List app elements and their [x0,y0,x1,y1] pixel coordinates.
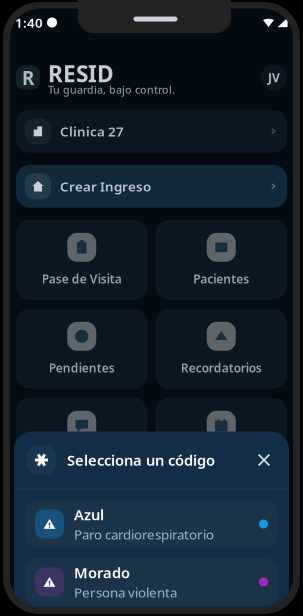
button[interactable]: Clinica 27 [16,110,287,153]
button[interactable]: Azul [25,500,278,547]
staticText: 1:40 [15,14,43,31]
staticText: Morado [74,563,130,582]
staticText: RESID [48,58,114,89]
staticText: Pacientes [193,271,249,287]
staticText: Azul [74,505,104,524]
button[interactable]: Crear Ingreso [16,165,287,208]
button[interactable]: Pacientes [155,220,287,300]
staticText: R [22,65,34,90]
button[interactable]: Cerrar [252,448,276,472]
button[interactable]: Perfil JV [261,65,287,91]
staticText: Clinica 27 [60,122,124,140]
button[interactable]: Pendientes [16,309,147,389]
staticText: Persona violenta [74,583,177,601]
staticText: Paro cardiorespiratorio [74,525,214,543]
button[interactable]: Recordatorios [155,309,287,389]
staticText: JV [268,70,280,86]
staticText: Pase de Visita [42,271,122,287]
staticText: Recordatorios [181,360,262,376]
staticText: Pendientes [49,360,115,376]
button[interactable]: Morado [25,558,278,605]
button[interactable]: Mensajes [16,398,147,478]
button[interactable]: Pase de Visita [16,220,147,300]
button[interactable]: Agenda [155,398,287,478]
staticText: Tu guardia, bajo control. [48,83,175,97]
staticText: Agenda [198,449,244,465]
staticText: Selecciona un código [67,450,215,470]
staticText: Mensajes [54,449,109,465]
staticText: Crear Ingreso [60,177,151,195]
